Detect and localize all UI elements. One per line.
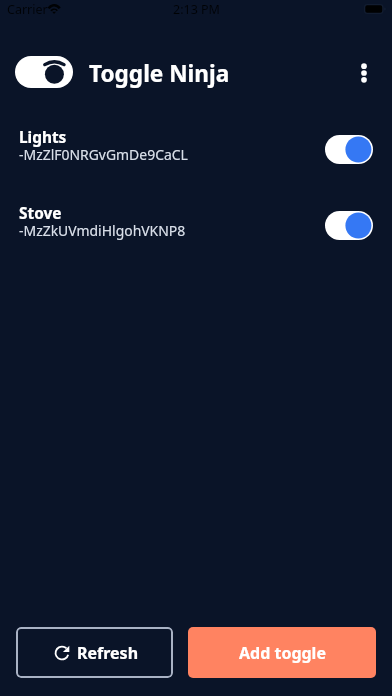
staticText: 2:13 PM bbox=[173, 1, 220, 18]
button[interactable]: Toggle Stove bbox=[325, 211, 373, 240]
staticText: Refresh bbox=[77, 642, 139, 664]
staticText: Toggle Ninja bbox=[89, 58, 230, 89]
button[interactable]: More options bbox=[344, 53, 384, 93]
button[interactable]: Refresh bbox=[16, 627, 173, 678]
staticText: Stove bbox=[19, 203, 62, 224]
staticText: Carrier bbox=[7, 1, 48, 18]
staticText: -MzZlF0NRGvGmDe9CaCL bbox=[19, 145, 188, 164]
button[interactable]: Lights bbox=[0, 124, 392, 176]
staticText: Add toggle bbox=[239, 642, 326, 664]
button[interactable]: Stove bbox=[0, 200, 392, 252]
button[interactable]: Add toggle bbox=[188, 627, 376, 678]
staticText: Lights bbox=[19, 127, 67, 148]
button[interactable]: Toggle Lights bbox=[325, 135, 373, 164]
staticText: -MzZkUVmdiHlgohVKNP8 bbox=[19, 221, 186, 240]
